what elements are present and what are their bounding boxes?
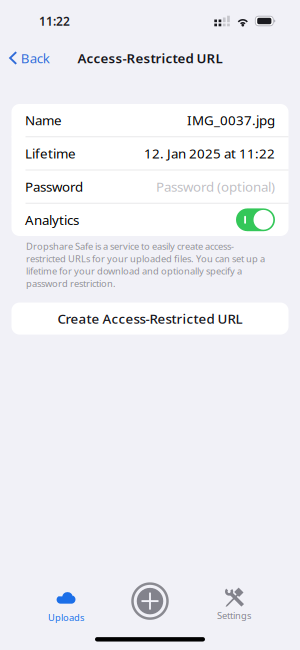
staticText: Analytics (25, 211, 79, 229)
button[interactable]: Add (108, 582, 192, 626)
button[interactable]: Back (0, 42, 58, 74)
staticText: Settings (217, 609, 251, 621)
staticText: Create Access-Restricted URL (57, 310, 242, 327)
staticText: Lifetime (25, 144, 76, 162)
button[interactable]: Uploads (24, 582, 108, 626)
staticText: 12. Jan 2025 at 11:22 (144, 144, 275, 162)
button[interactable]: Settings (192, 582, 276, 626)
staticText: Dropshare Safe is a service to easily cr… (26, 240, 265, 290)
staticText: Password (25, 178, 83, 195)
button[interactable]: Create Access-Restricted URL (11, 303, 288, 335)
staticText: Uploads (48, 611, 84, 623)
staticText: 11:22 (39, 13, 70, 29)
staticText: Access-Restricted URL (77, 49, 222, 67)
staticText: Password (optional) (156, 178, 275, 195)
staticText: Name (25, 111, 62, 129)
staticText: IMG_0037.jpg (187, 111, 275, 129)
staticText: Back (21, 49, 50, 67)
